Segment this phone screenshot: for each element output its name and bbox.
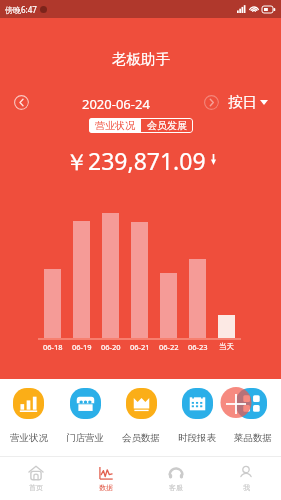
staticText: 06-23: [188, 342, 208, 352]
staticText: 06-20: [101, 342, 121, 352]
button[interactable]: 我: [211, 457, 281, 500]
staticText: 傍晚6:47: [5, 4, 37, 15]
staticText: 会员发展: [147, 119, 187, 132]
staticText: 营业状况: [10, 432, 48, 444]
button[interactable]: 营业状况: [95, 118, 135, 133]
button[interactable]: 会员数据: [113, 388, 169, 444]
staticText: 当天: [219, 342, 234, 351]
staticText: 按日: [228, 93, 257, 111]
staticText: 客服: [169, 483, 183, 492]
staticText: 时段报表: [178, 432, 216, 444]
staticText: 营业状况: [95, 119, 135, 132]
staticText: 老板助手: [112, 50, 170, 66]
staticText: 会员数据: [122, 432, 160, 444]
button[interactable]: Previous day: [13, 94, 29, 110]
staticText: 门店营业: [66, 432, 104, 444]
button[interactable]: 客服: [141, 457, 211, 500]
staticText: 06-18: [43, 342, 63, 352]
staticText: 数据: [99, 483, 113, 492]
staticText: 首页: [29, 483, 43, 492]
button[interactable]: 数据: [71, 457, 141, 500]
button[interactable]: 菜品数据: [225, 388, 281, 444]
button[interactable]: 会员发展: [147, 118, 187, 133]
staticText: ￥239,871.09: [65, 145, 206, 175]
staticText: 06-21: [130, 342, 150, 352]
staticText: 06-22: [159, 342, 179, 352]
staticText: 06-19: [72, 342, 92, 352]
staticText: 我: [243, 483, 250, 492]
button[interactable]: 按日: [228, 90, 268, 114]
button[interactable]: 首页: [0, 457, 71, 500]
staticText: 菜品数据: [234, 432, 272, 444]
button[interactable]: 时段报表: [169, 388, 225, 444]
button[interactable]: 营业状况: [0, 388, 57, 444]
button[interactable]: 门店营业: [57, 388, 113, 444]
staticText: 2020-06-24: [82, 95, 150, 113]
button[interactable]: Next day: [203, 94, 219, 110]
